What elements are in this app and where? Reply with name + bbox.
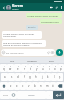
staticText: Consectetur elit (41, 20, 59, 23)
staticText: d (17, 75, 19, 79)
staticText: 2 (10, 65, 11, 67)
button[interactable]: 1 (0, 64, 7, 72)
staticText: 0 (61, 65, 62, 67)
button[interactable]: 3 (14, 64, 21, 72)
staticText: w (9, 67, 12, 71)
button[interactable]: Teşekkür (26, 58, 39, 63)
button[interactable]: f (21, 73, 27, 81)
staticText: f (24, 75, 25, 79)
staticText: ö (52, 84, 54, 88)
button[interactable]: j (39, 73, 45, 81)
button[interactable]: ş (57, 73, 63, 81)
staticText: n (40, 84, 42, 88)
button[interactable]: 0 (58, 64, 64, 72)
button[interactable]: 7 (40, 64, 46, 72)
button[interactable]: 9 (52, 64, 58, 72)
staticText: q (3, 67, 5, 71)
staticText: y (36, 67, 38, 71)
staticText: 8 (49, 65, 50, 67)
staticText: s (11, 75, 13, 79)
button[interactable]: g (27, 73, 33, 81)
staticText: g (29, 75, 31, 79)
staticText: online (12, 8, 19, 11)
staticText: e (17, 67, 19, 71)
staticText: p (60, 67, 62, 71)
button[interactable]: z (8, 82, 14, 90)
staticText: BUGÜN (28, 26, 36, 29)
staticText: j (42, 75, 43, 79)
button[interactable]: b (32, 82, 38, 90)
staticText: c (22, 84, 24, 88)
staticText: Evet (49, 59, 54, 62)
staticText: 4 (25, 65, 26, 67)
staticText: 7 (43, 65, 44, 67)
button[interactable]: Back (1, 5, 6, 10)
button[interactable]: Video call (49, 5, 54, 10)
staticText: ş (59, 75, 61, 79)
staticText: Bir mesaj yazın (6, 51, 24, 54)
button[interactable]: ?123 (0, 91, 10, 99)
staticText: x (16, 84, 18, 88)
button[interactable]: l (51, 73, 57, 81)
button[interactable]: 4 (21, 64, 28, 72)
staticText: 6 (37, 65, 38, 67)
staticText: a (4, 75, 6, 79)
button[interactable]: Kerem (12, 3, 49, 11)
button[interactable]: c (20, 82, 26, 90)
button[interactable]: n (38, 82, 44, 90)
staticText: z (10, 84, 12, 88)
button[interactable]: Lorem ipsum dolor sit amet (26, 13, 62, 18)
button[interactable]: 6 (34, 64, 40, 72)
staticText: v (28, 84, 30, 88)
button[interactable]: Enter (53, 91, 64, 99)
staticText: l (54, 75, 55, 79)
button[interactable]: Key (56, 82, 64, 90)
button[interactable]: s (8, 73, 15, 81)
staticText: k (47, 75, 49, 79)
staticText: m (46, 84, 49, 88)
staticText: ı (49, 67, 50, 71)
button[interactable]: v (26, 82, 32, 90)
button[interactable]: Lorem ipsum dolor sit amet consectetur (2, 31, 42, 39)
staticText: . (49, 94, 50, 97)
button[interactable]: h (33, 73, 39, 81)
button[interactable]: More options (59, 5, 63, 9)
staticText: Türkçe (28, 94, 35, 97)
button[interactable]: 5 (28, 64, 34, 72)
button[interactable]: Consectetur elit (40, 19, 62, 24)
staticText: b (34, 84, 36, 88)
staticText: Lorem ipsum dolor sit amet consectetur (3, 32, 41, 38)
button[interactable]: m (44, 82, 50, 90)
button[interactable]: Türkçe (17, 91, 46, 99)
button[interactable]: Evet (48, 58, 55, 63)
staticText: Lorem ipsum dolor sit amet (27, 14, 59, 17)
button[interactable]: Sed do eiusmod tempor incididunt labore … (2, 40, 46, 47)
button[interactable]: Sen (9, 58, 16, 63)
staticText: Teşekkür (27, 59, 38, 62)
button[interactable]: Key (0, 82, 8, 90)
staticText: 1 (4, 65, 5, 67)
staticText: Sen (10, 59, 15, 62)
staticText: 3 (18, 65, 19, 67)
button[interactable]: d (15, 73, 21, 81)
staticText: o (54, 67, 56, 71)
button[interactable]: Call (54, 5, 59, 10)
button[interactable]: k (45, 73, 51, 81)
staticText: 5 (31, 65, 32, 67)
button[interactable]: Bir mesaj yazın (1, 49, 55, 56)
staticText: u (42, 67, 44, 71)
button[interactable]: ö (50, 82, 56, 90)
button[interactable]: x (14, 82, 20, 90)
button[interactable]: 8 (46, 64, 52, 72)
button[interactable]: Key (10, 91, 17, 99)
button[interactable]: 2 (7, 64, 14, 72)
button[interactable]: a (1, 73, 8, 81)
staticText: ?123 (3, 94, 8, 97)
staticText: h (35, 75, 37, 79)
staticText: Kerem (12, 3, 24, 8)
button[interactable]: Send (56, 49, 63, 56)
staticText: 9 (55, 65, 56, 67)
staticText: Sed do eiusmod tempor incididunt labore … (3, 41, 45, 46)
staticText: r (24, 67, 26, 71)
